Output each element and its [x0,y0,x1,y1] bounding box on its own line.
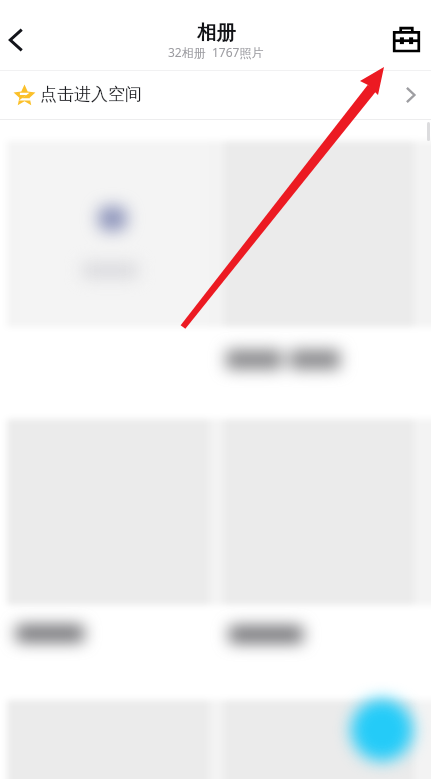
button[interactable] [224,141,414,327]
button[interactable] [7,141,209,327]
button[interactable]: Back [0,17,39,63]
staticText: 点击进入空间 [40,84,142,105]
button[interactable] [224,700,414,779]
staticText: 相册 [197,20,236,45]
button[interactable]: Toolbox [383,16,429,62]
button[interactable]: Add album [351,699,413,761]
staticText: 32相册 1767照片 [168,44,264,60]
button[interactable]: 点击进入空间 [0,71,431,119]
